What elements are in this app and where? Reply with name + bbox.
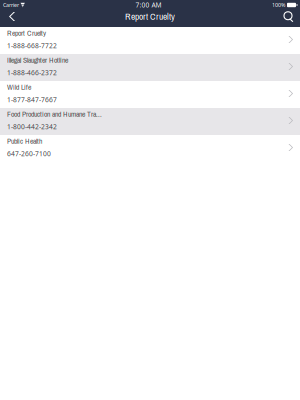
staticText: 1-888-466-2372 bbox=[7, 68, 57, 77]
staticText: Report Cruelty bbox=[125, 10, 175, 23]
staticText: Carrier bbox=[3, 1, 19, 9]
staticText: Illegal Slaughter Hotline bbox=[7, 55, 68, 65]
staticText: 1-877-847-7667 bbox=[7, 95, 57, 104]
staticText: 1-800-442-2342 bbox=[7, 122, 57, 131]
staticText: 100% bbox=[272, 1, 285, 9]
staticText: Wild Life bbox=[7, 82, 31, 92]
staticText: 647-260-7100 bbox=[7, 149, 51, 158]
staticText: Report Cruelty bbox=[7, 28, 46, 38]
staticText: 7:00 AM bbox=[135, 1, 161, 9]
button[interactable]: Back bbox=[3, 9, 21, 28]
staticText: 1-888-668-7722 bbox=[7, 41, 57, 50]
staticText: Food Production and Humane Tra... bbox=[7, 109, 102, 119]
button[interactable]: Search bbox=[280, 9, 298, 28]
button[interactable]: Illegal Slaughter Hotline bbox=[0, 54, 300, 81]
button[interactable]: Report Cruelty bbox=[0, 27, 300, 54]
button[interactable]: Public Health bbox=[0, 135, 300, 162]
staticText: Public Health bbox=[7, 136, 42, 146]
button[interactable]: Wild Life bbox=[0, 81, 300, 108]
button[interactable]: Food Production and Humane Tra... bbox=[0, 108, 300, 135]
